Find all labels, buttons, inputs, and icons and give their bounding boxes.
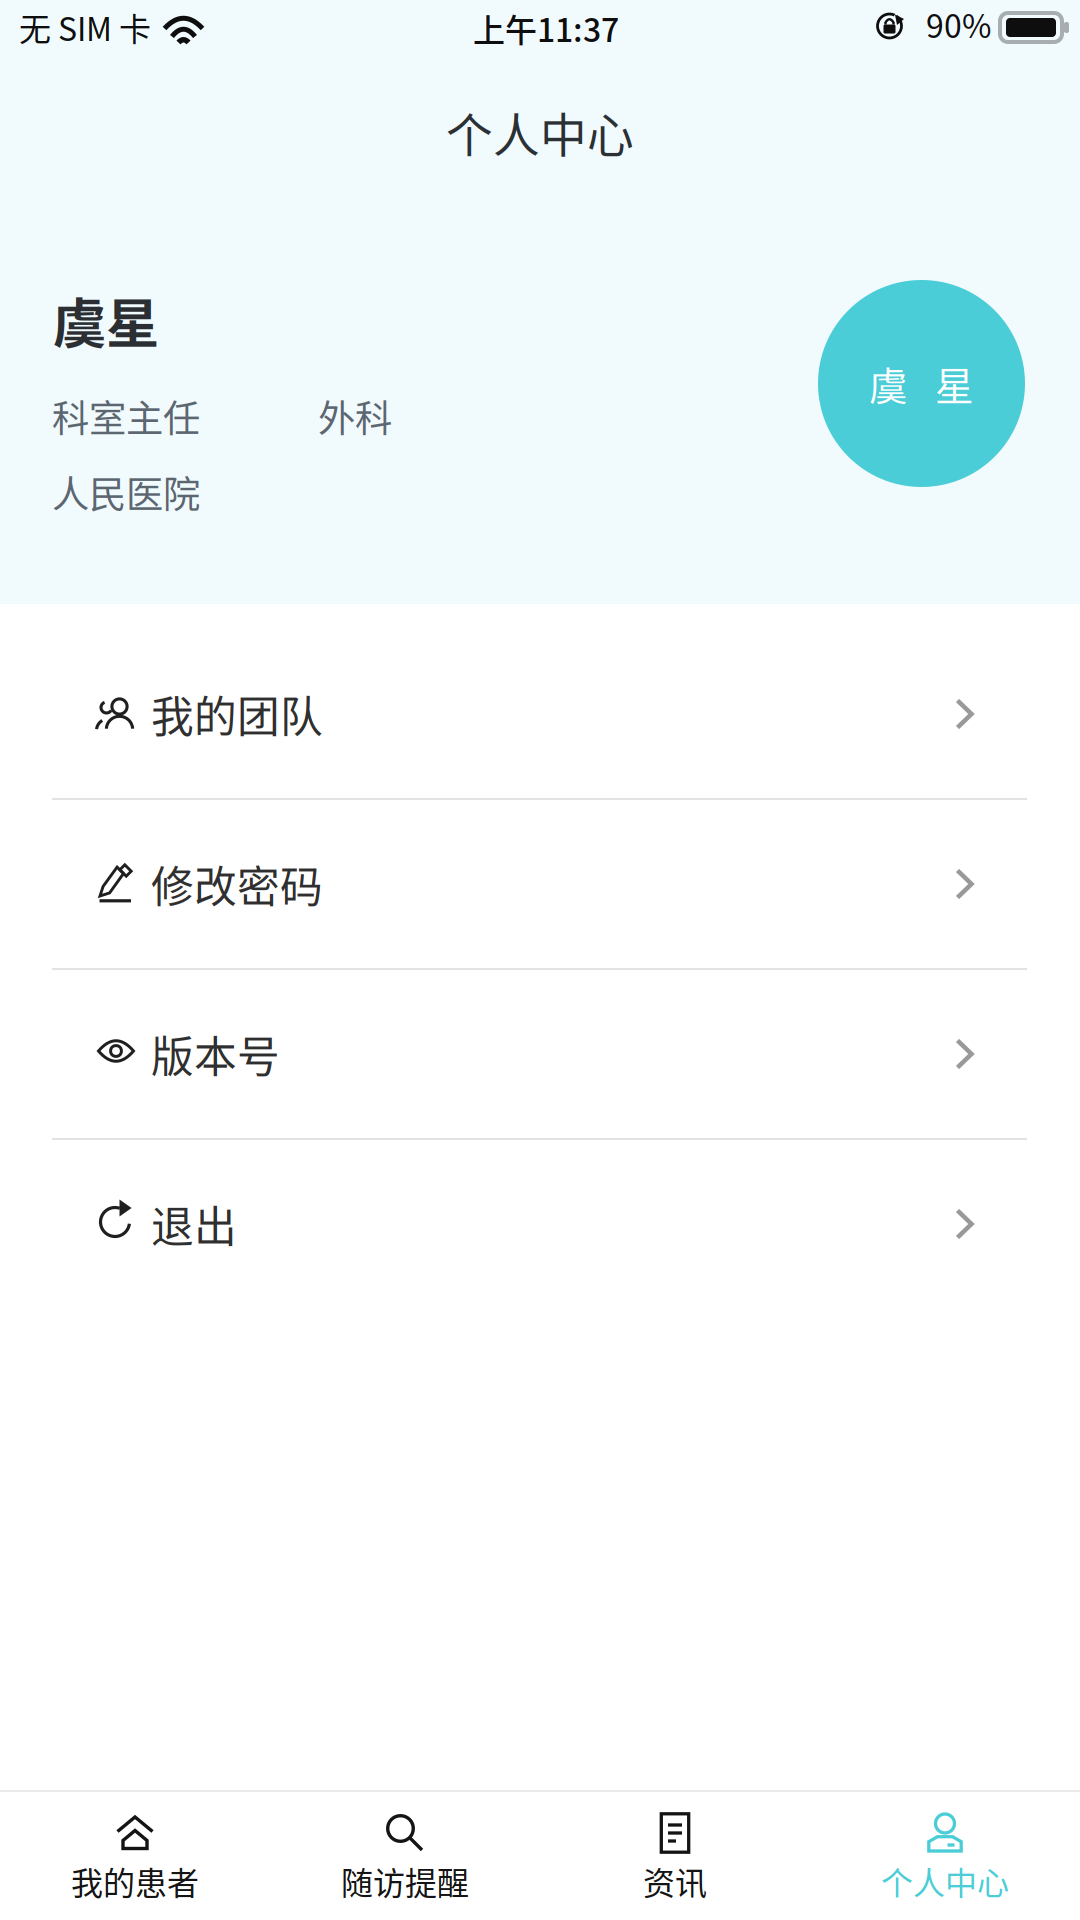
staticText: 版本号 — [151, 1023, 280, 1085]
staticText: 科室主任 — [52, 389, 200, 443]
staticText: 无 SIM 卡 — [19, 4, 151, 50]
staticText: 上午11:37 — [473, 5, 619, 51]
staticText: 退出 — [151, 1193, 237, 1255]
staticText: 人民医院 — [52, 465, 200, 519]
staticText: 外科 — [318, 389, 392, 443]
staticText: 修改密码 — [151, 853, 323, 915]
staticText: 资讯 — [643, 1858, 707, 1904]
button[interactable]: 修改密码 — [0, 800, 1080, 968]
staticText: 个人中心 — [446, 98, 634, 166]
button[interactable]: 个人中心 — [810, 1791, 1080, 1920]
button[interactable]: 资讯 — [540, 1791, 810, 1920]
staticText: 个人中心 — [881, 1858, 1009, 1904]
staticText: 我的团队 — [151, 683, 323, 745]
button[interactable]: 版本号 — [0, 970, 1080, 1138]
staticText: 虞 星 — [869, 355, 974, 411]
staticText: 90% — [926, 1, 991, 47]
staticText: 虞星 — [53, 281, 159, 359]
staticText: 随访提醒 — [341, 1858, 469, 1904]
staticText: 我的患者 — [71, 1858, 199, 1904]
button[interactable]: 我的团队 — [0, 630, 1080, 798]
button[interactable]: 随访提醒 — [270, 1791, 540, 1920]
button[interactable]: 我的患者 — [0, 1791, 270, 1920]
button[interactable]: 退出 — [0, 1140, 1080, 1308]
